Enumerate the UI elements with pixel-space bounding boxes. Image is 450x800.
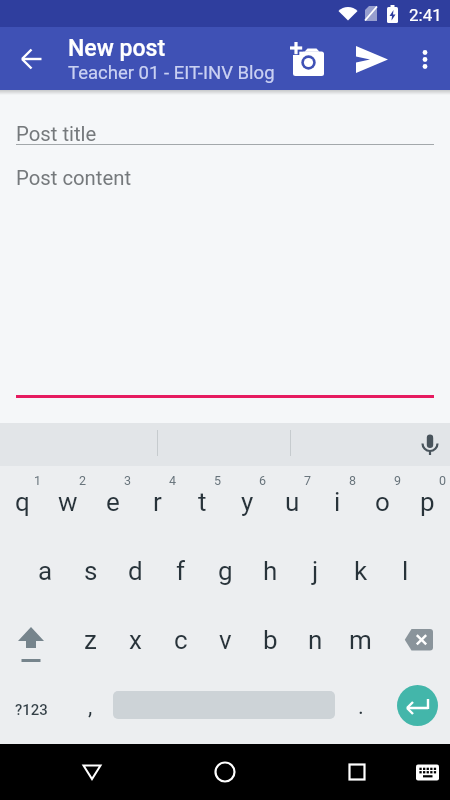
button[interactable] xyxy=(9,36,55,82)
staticText: 5 xyxy=(214,473,222,488)
button[interactable]: i xyxy=(315,467,360,536)
button[interactable]: w xyxy=(45,467,90,536)
staticText: a xyxy=(38,556,53,586)
button[interactable]: ?123 xyxy=(0,675,62,744)
staticText: r xyxy=(153,487,162,517)
staticText: e xyxy=(106,487,120,517)
staticText: . xyxy=(358,694,364,720)
staticText: s xyxy=(84,556,98,586)
button[interactable]: m xyxy=(338,605,383,674)
staticText: 9 xyxy=(394,473,402,488)
button[interactable]: g xyxy=(203,536,248,605)
button[interactable]: o xyxy=(360,467,405,536)
button[interactable]: j xyxy=(293,536,338,605)
button[interactable]: k xyxy=(338,536,383,605)
button[interactable]: , xyxy=(68,672,113,741)
button[interactable]: Post content xyxy=(0,156,450,398)
button[interactable]: y xyxy=(225,467,270,536)
staticText: 4 xyxy=(169,473,177,488)
button[interactable]: f xyxy=(158,536,203,605)
button[interactable]: d xyxy=(113,536,158,605)
button[interactable] xyxy=(388,605,450,674)
staticText: j xyxy=(312,556,319,586)
staticText: h xyxy=(263,556,278,586)
staticText: w xyxy=(58,487,78,517)
staticText: 2:41 xyxy=(409,5,442,25)
staticText: p xyxy=(420,487,435,517)
staticText: d xyxy=(128,556,143,586)
staticText: l xyxy=(402,556,409,586)
staticText: t xyxy=(198,487,207,517)
staticText: m xyxy=(349,625,372,655)
button[interactable]: b xyxy=(248,605,293,674)
button[interactable] xyxy=(409,423,450,466)
button[interactable]: . xyxy=(338,672,383,741)
staticText: x xyxy=(129,625,142,655)
staticText: u xyxy=(285,487,300,517)
staticText: 0 xyxy=(439,473,447,488)
staticText: 3 xyxy=(124,473,132,488)
button[interactable]: z xyxy=(68,605,113,674)
button[interactable]: a xyxy=(23,536,68,605)
staticText: Post title xyxy=(16,122,97,146)
staticText: q xyxy=(15,487,30,517)
button[interactable]: x xyxy=(113,605,158,674)
button[interactable]: Post title xyxy=(0,112,450,147)
button[interactable]: v xyxy=(203,605,248,674)
button[interactable]: r xyxy=(135,467,180,536)
button[interactable] xyxy=(201,747,249,797)
staticText: g xyxy=(218,556,233,586)
staticText: i xyxy=(334,487,341,517)
staticText: 6 xyxy=(259,473,267,488)
button[interactable] xyxy=(346,37,392,83)
staticText: k xyxy=(354,556,368,586)
button[interactable] xyxy=(0,605,62,674)
button[interactable] xyxy=(397,685,438,726)
staticText: c xyxy=(174,625,188,655)
staticText: 8 xyxy=(349,473,357,488)
staticText: o xyxy=(375,487,390,517)
staticText: ?123 xyxy=(15,701,48,719)
staticText: n xyxy=(308,625,323,655)
staticText: 2 xyxy=(79,473,87,488)
button[interactable]: e xyxy=(90,467,135,536)
button[interactable]: t xyxy=(180,467,225,536)
staticText: b xyxy=(263,625,278,655)
button[interactable]: q xyxy=(0,467,45,536)
staticText: Teacher 01 - EIT-INV Blog xyxy=(68,62,275,84)
button[interactable]: n xyxy=(293,605,338,674)
button[interactable] xyxy=(68,747,116,797)
staticText: , xyxy=(88,694,93,720)
staticText: New post xyxy=(68,35,166,62)
staticText: 1 xyxy=(34,473,42,488)
staticText: f xyxy=(176,556,186,586)
staticText: z xyxy=(84,625,97,655)
button[interactable]: s xyxy=(68,536,113,605)
button[interactable]: u xyxy=(270,467,315,536)
button[interactable]: h xyxy=(248,536,293,605)
button[interactable] xyxy=(333,747,381,797)
button[interactable] xyxy=(402,37,448,83)
button[interactable]: l xyxy=(383,536,428,605)
staticText: 7 xyxy=(304,473,312,488)
staticText: y xyxy=(241,487,254,517)
staticText: Post content xyxy=(16,166,132,190)
button[interactable]: c xyxy=(158,605,203,674)
button[interactable] xyxy=(408,752,446,792)
button[interactable]: p xyxy=(405,467,450,536)
staticText: v xyxy=(219,625,232,655)
button[interactable] xyxy=(285,37,331,83)
